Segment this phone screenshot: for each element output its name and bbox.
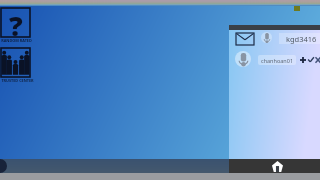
button[interactable]: chanhoan01 xyxy=(229,50,320,68)
staticText: ? xyxy=(9,7,23,36)
staticText: chanhoan01 xyxy=(261,57,294,64)
button[interactable]: Messages xyxy=(229,30,320,50)
staticText: RANDOM RATED xyxy=(1,38,32,43)
other: Add xyxy=(300,57,306,63)
other: Messages xyxy=(236,33,254,45)
other: Accept xyxy=(308,57,314,63)
staticText: kgd3416 xyxy=(286,34,317,44)
button[interactable]: Random rated xyxy=(1,8,33,46)
button[interactable]: Trusted center xyxy=(1,48,33,86)
button[interactable]: Home xyxy=(269,158,285,174)
staticText: TRUSTED CENTER xyxy=(1,78,34,83)
button[interactable]: Start xyxy=(0,159,7,173)
other: Decline xyxy=(315,57,320,63)
